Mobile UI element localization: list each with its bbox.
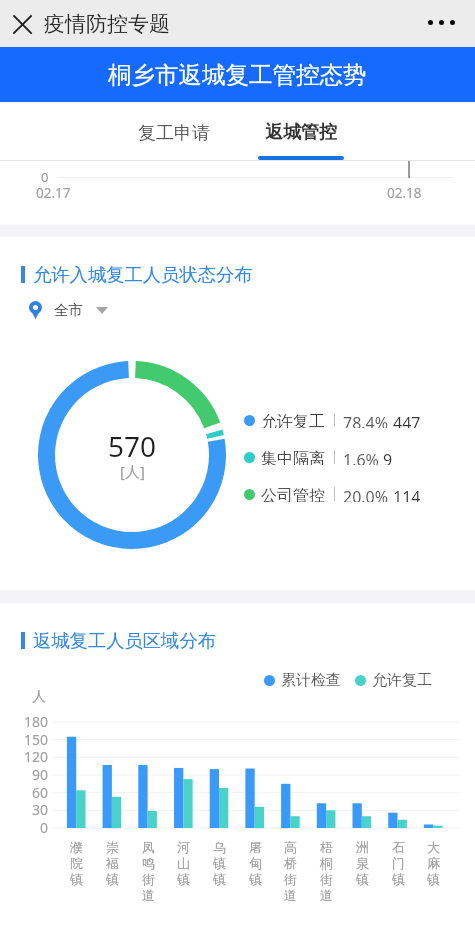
staticText: 镇 xyxy=(213,871,226,887)
staticText: 78.4% xyxy=(343,412,389,428)
staticText: 0 xyxy=(41,168,49,186)
staticText: 02.18 xyxy=(387,184,422,202)
staticText: 120 xyxy=(24,747,49,766)
staticText: 道 xyxy=(284,887,297,903)
button[interactable]: More options xyxy=(423,4,463,44)
staticText: 镇 xyxy=(213,855,226,871)
button[interactable]: 复工申请 xyxy=(117,102,230,161)
staticText: 鸣 xyxy=(142,855,155,871)
staticText: 人 xyxy=(32,688,46,706)
staticText: 90 xyxy=(32,765,49,784)
staticText: 凤 xyxy=(142,839,155,855)
staticText: 9 xyxy=(383,449,393,465)
staticText: 镇 xyxy=(249,871,262,887)
staticText: 泉 xyxy=(356,855,369,871)
staticText: 街 xyxy=(142,871,155,887)
staticText: 院 xyxy=(70,855,83,871)
staticText: 复工申请 xyxy=(138,122,210,145)
staticText: 屠 xyxy=(249,839,262,855)
staticText: 梧 xyxy=(320,839,333,855)
staticText: 60 xyxy=(32,783,49,802)
staticText: 返城管控 xyxy=(265,121,337,144)
staticText: 桐乡市返城复工管控态势 xyxy=(108,60,367,90)
staticText: 崇 xyxy=(106,839,119,855)
staticText: 大 xyxy=(427,839,440,855)
staticText: 集中隔离 xyxy=(261,449,325,465)
staticText: 0 xyxy=(40,818,49,837)
staticText: 福 xyxy=(106,855,119,871)
staticText: 街 xyxy=(320,871,333,887)
staticText: [人] xyxy=(120,461,145,481)
staticText: 镇 xyxy=(392,871,405,887)
button[interactable]: Close xyxy=(3,5,41,43)
staticText: 濮 xyxy=(70,839,83,855)
staticText: 镇 xyxy=(356,871,369,887)
staticText: 30 xyxy=(32,800,49,819)
staticText: 返城复工人员区域分布 xyxy=(33,629,216,652)
staticText: 公司管控 xyxy=(261,486,325,502)
staticText: 山 xyxy=(177,855,190,871)
staticText: 20.0% xyxy=(343,486,389,502)
staticText: 180 xyxy=(24,712,49,731)
staticText: 镇 xyxy=(427,871,440,887)
staticText: 门 xyxy=(392,855,405,871)
staticText: 街 xyxy=(284,871,297,887)
staticText: 河 xyxy=(177,839,190,855)
staticText: 114 xyxy=(393,486,421,502)
staticText: 镇 xyxy=(177,871,190,887)
staticText: 镇 xyxy=(70,871,83,887)
staticText: 石 xyxy=(392,839,405,855)
staticText: 1.6% xyxy=(343,449,379,465)
staticText: 洲 xyxy=(356,839,369,855)
button[interactable]: 返城管控 xyxy=(244,102,357,161)
staticText: 允许入城复工人员状态分布 xyxy=(33,263,253,286)
staticText: 镇 xyxy=(106,871,119,887)
staticText: 高 xyxy=(284,839,297,855)
staticText: 02.17 xyxy=(36,184,71,202)
staticText: 累计检查 xyxy=(281,671,341,690)
staticText: 允许复工 xyxy=(372,671,432,690)
staticText: 447 xyxy=(393,412,421,428)
staticText: 桥 xyxy=(284,855,297,871)
staticText: 桐 xyxy=(320,855,333,871)
staticText: 麻 xyxy=(427,855,440,871)
staticText: 允许复工 xyxy=(261,412,325,428)
staticText: 道 xyxy=(142,887,155,903)
staticText: 150 xyxy=(24,730,49,749)
staticText: 疫情防控专题 xyxy=(44,11,170,37)
staticText: 570 xyxy=(108,427,157,465)
button[interactable]: 全市 xyxy=(29,301,108,319)
staticText: 道 xyxy=(320,887,333,903)
staticText: 乌 xyxy=(213,839,226,855)
staticText: 甸 xyxy=(249,855,262,871)
staticText: 全市 xyxy=(54,301,83,319)
